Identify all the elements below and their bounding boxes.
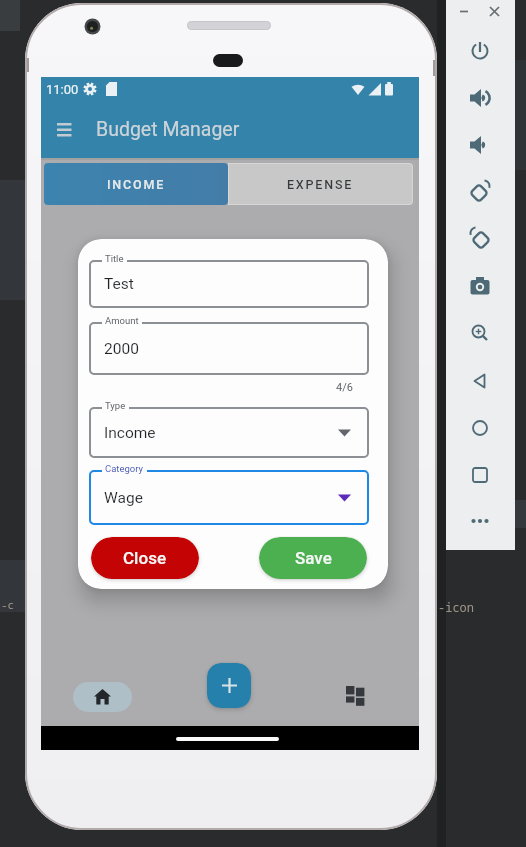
- staticText: Type: [105, 400, 126, 411]
- staticText: Test: [104, 275, 134, 293]
- staticText: INCOME: [107, 177, 166, 192]
- staticText: Close: [123, 548, 167, 568]
- button[interactable]: EXPENSE: [228, 163, 413, 205]
- button[interactable]: Wage: [89, 470, 369, 525]
- button[interactable]: [337, 678, 373, 714]
- staticText: EXPENSE: [287, 177, 354, 192]
- staticText: Title: [105, 253, 124, 264]
- staticText: Amount: [105, 315, 139, 326]
- button[interactable]: [207, 663, 251, 708]
- button[interactable]: [73, 682, 132, 712]
- staticText: -icon: [438, 599, 475, 615]
- button[interactable]: Income: [89, 407, 369, 458]
- button[interactable]: Save: [259, 537, 367, 579]
- button[interactable]: Close: [91, 537, 199, 579]
- button[interactable]: INCOME: [44, 163, 228, 205]
- staticText: Income: [104, 424, 156, 442]
- staticText: Budget Manager: [96, 118, 240, 141]
- staticText: Save: [295, 548, 332, 568]
- staticText: 4/6: [336, 381, 353, 394]
- staticText: -c: [1, 597, 15, 612]
- button[interactable]: Test: [89, 260, 369, 308]
- staticText: 2000: [104, 340, 139, 358]
- button[interactable]: 2000: [89, 322, 369, 375]
- staticText: Category: [105, 463, 144, 474]
- staticText: Wage: [104, 489, 143, 507]
- staticText: 11:00: [46, 82, 79, 97]
